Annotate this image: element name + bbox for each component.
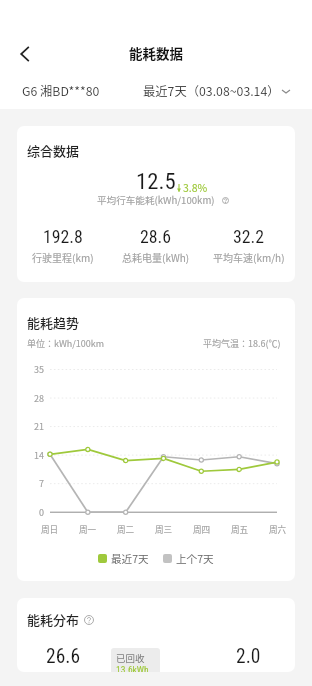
staticText: 12.5 bbox=[136, 168, 176, 195]
staticText: 3.8% bbox=[183, 180, 208, 195]
staticText: 2.0 bbox=[236, 645, 261, 668]
staticText: 35 bbox=[34, 363, 44, 376]
staticText: 28.6 bbox=[140, 226, 172, 247]
staticText: 周三 bbox=[155, 523, 173, 535]
staticText: 周四 bbox=[193, 523, 211, 535]
staticText: 最近7天（03.08~03.14） bbox=[143, 82, 280, 100]
staticText: 周六 bbox=[269, 523, 287, 535]
staticText: 能耗分布 bbox=[27, 610, 80, 629]
staticText: 行驶里程(km) bbox=[32, 250, 94, 264]
staticText: 周日 bbox=[41, 523, 59, 535]
staticText: 已回收 bbox=[116, 651, 145, 665]
staticText: 单位：kWh/100km bbox=[27, 337, 105, 350]
staticText: 周一 bbox=[79, 523, 97, 535]
staticText: 13.6kWh bbox=[116, 664, 149, 672]
button[interactable]: Back bbox=[11, 40, 39, 68]
staticText: 0 bbox=[39, 506, 44, 519]
staticText: 能耗趋势 bbox=[27, 313, 80, 332]
staticText: 能耗数据 bbox=[129, 43, 183, 63]
staticText: 平均行车能耗(kWh/100km) bbox=[97, 193, 215, 207]
staticText: 平均车速(km/h) bbox=[213, 250, 285, 264]
staticText: 28 bbox=[34, 392, 44, 405]
staticText: 上个7天 bbox=[176, 551, 214, 566]
staticText: 总耗电量(kWh) bbox=[122, 250, 190, 264]
staticText: 综合数据 bbox=[27, 141, 80, 160]
staticText: 192.8 bbox=[43, 226, 83, 247]
staticText: 最近7天 bbox=[111, 551, 149, 566]
staticText: G6 湘BD***80 bbox=[22, 82, 100, 100]
staticText: 周五 bbox=[231, 523, 249, 535]
button[interactable]: 最近7天（03.08~03.14） bbox=[143, 82, 291, 100]
staticText: 21 bbox=[34, 420, 44, 433]
staticText: 平均气温：18.6(℃) bbox=[203, 337, 281, 350]
staticText: 周二 bbox=[117, 523, 135, 535]
staticText: 32.2 bbox=[233, 226, 265, 247]
staticText: 14 bbox=[34, 449, 44, 462]
staticText: 7 bbox=[39, 477, 44, 490]
staticText: 26.6 bbox=[46, 645, 81, 668]
